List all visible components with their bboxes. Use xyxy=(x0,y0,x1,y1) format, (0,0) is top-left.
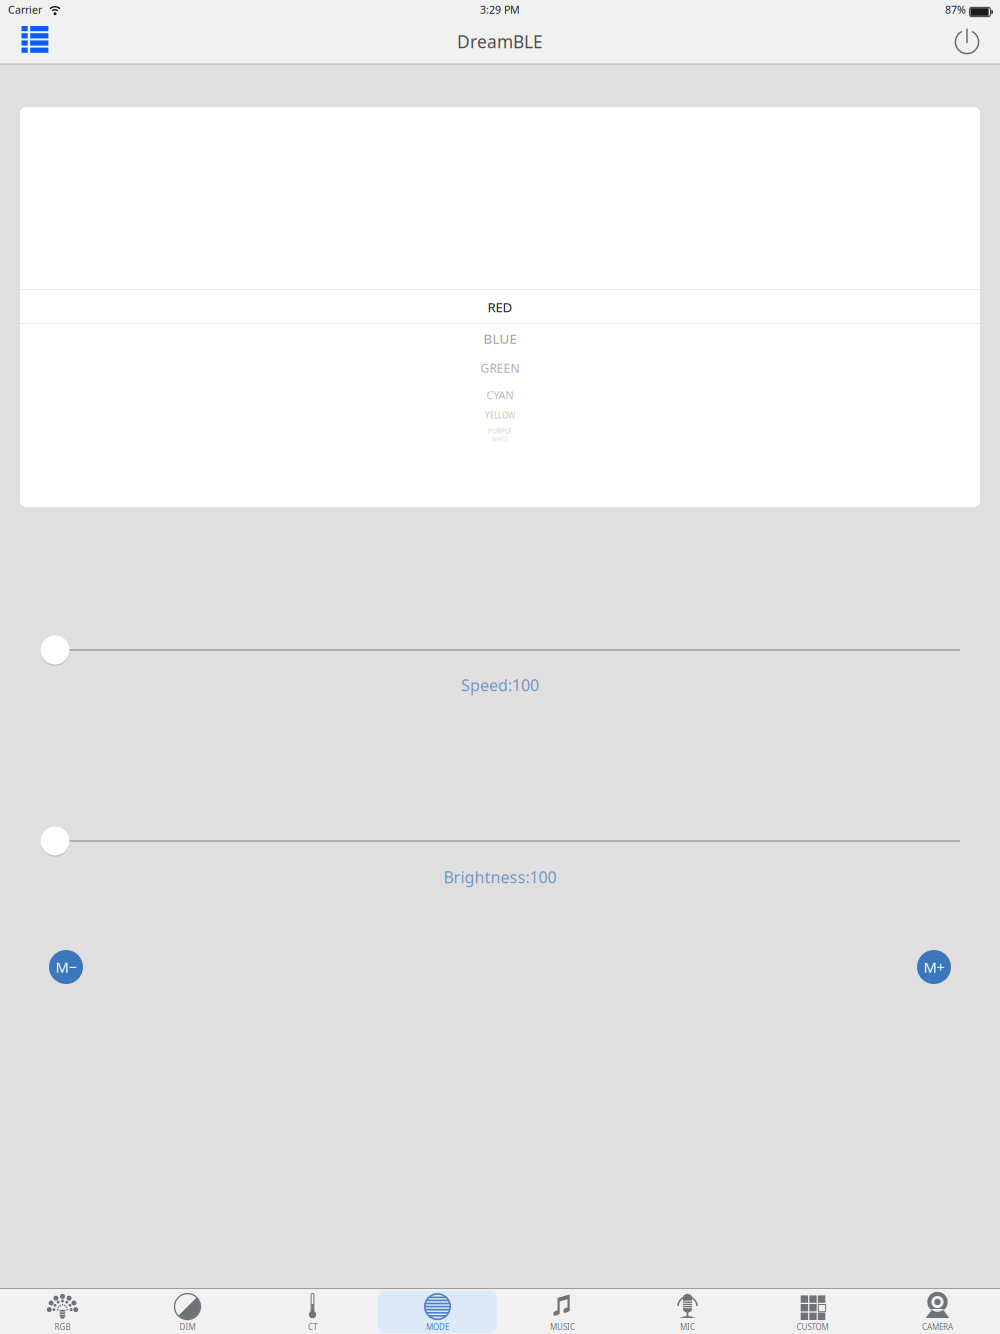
staticText: DIM xyxy=(179,1321,195,1332)
staticText: Brightness:100 xyxy=(443,866,556,888)
staticText: CYAN xyxy=(486,388,513,402)
button[interactable]: MUSIC xyxy=(500,1289,625,1334)
staticText: Carrier xyxy=(8,2,42,17)
button[interactable]: DIM xyxy=(125,1289,250,1334)
staticText: CUSTOM xyxy=(796,1321,828,1332)
button[interactable]: CAMERA xyxy=(875,1289,1000,1334)
staticText: CAMERA xyxy=(922,1321,953,1332)
button[interactable]: CT xyxy=(250,1289,375,1334)
staticText: DreamBLE xyxy=(457,30,543,53)
button[interactable]: Devices xyxy=(14,19,56,63)
staticText: 87% xyxy=(945,2,966,17)
staticText: MUSIC xyxy=(550,1321,575,1332)
staticText: YELLOW xyxy=(485,410,515,421)
staticText: PURPLE xyxy=(488,427,512,435)
button[interactable]: Power xyxy=(944,19,986,63)
staticText: Speed:100 xyxy=(461,674,539,696)
button[interactable]: MODE xyxy=(375,1289,500,1334)
staticText: 3:29 PM xyxy=(480,2,520,17)
button[interactable]: MIC xyxy=(625,1289,750,1334)
button[interactable]: M− xyxy=(49,950,83,984)
staticText: RGB xyxy=(54,1321,70,1332)
staticText: M+ xyxy=(923,957,944,977)
staticText: MODE xyxy=(426,1321,449,1332)
button[interactable]: CUSTOM xyxy=(750,1289,875,1334)
staticText: WHITE xyxy=(491,436,508,443)
staticText: GREEN xyxy=(480,360,519,376)
staticText: M− xyxy=(55,957,76,977)
staticText: RED xyxy=(487,298,512,316)
button[interactable]: RGB xyxy=(0,1289,125,1334)
staticText: MIC xyxy=(680,1321,695,1332)
button[interactable]: M+ xyxy=(917,950,951,984)
staticText: CT xyxy=(308,1321,317,1332)
staticText: BLUE xyxy=(483,330,516,347)
